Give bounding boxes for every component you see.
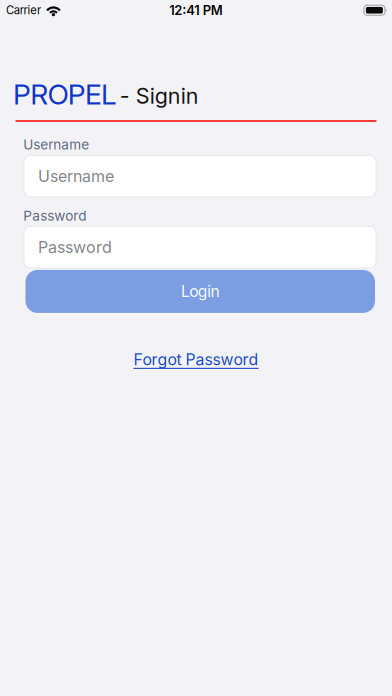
staticText: Password — [38, 237, 112, 257]
staticText: Carrier — [6, 3, 41, 17]
staticText: Password — [23, 208, 86, 224]
staticText: - Signin — [120, 83, 199, 109]
staticText: Login — [181, 282, 219, 301]
staticText: PROPEL — [13, 77, 117, 111]
staticText: Username — [38, 166, 114, 186]
staticText: Username — [23, 136, 89, 153]
staticText: 12:41 — [169, 2, 199, 18]
staticText: PM — [203, 2, 223, 18]
staticText: Forgot Password — [133, 350, 258, 369]
